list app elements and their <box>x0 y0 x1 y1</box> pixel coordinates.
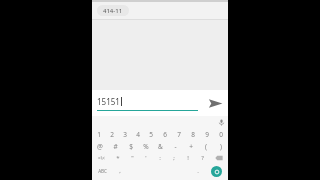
staticText: @ <box>97 142 103 151</box>
staticText: 9 <box>205 130 209 139</box>
button[interactable]: Enter <box>205 164 228 178</box>
button[interactable]: 0 <box>214 128 228 140</box>
button[interactable]: 7 <box>172 128 186 140</box>
staticText: ABC <box>98 168 107 174</box>
staticText: 5 <box>149 130 153 139</box>
button[interactable]: ? <box>195 152 209 164</box>
staticText: % <box>143 142 149 151</box>
staticText: ; <box>173 154 175 162</box>
button[interactable]: # <box>108 140 123 152</box>
button[interactable]: 4 <box>131 128 144 140</box>
button[interactable]: ! <box>181 152 195 164</box>
staticText: 7 <box>177 130 181 139</box>
button[interactable]: $ <box>123 140 138 152</box>
staticText: # <box>113 142 118 151</box>
button[interactable]: 5 <box>144 128 158 140</box>
button[interactable]: 1 <box>92 128 105 140</box>
button[interactable]: * <box>111 152 125 164</box>
staticText: ' <box>145 154 147 162</box>
button[interactable]: 15151 <box>97 96 198 111</box>
button[interactable]: - <box>168 140 183 152</box>
staticText: + <box>189 142 193 151</box>
staticText: ! <box>187 154 189 162</box>
button[interactable]: ; <box>167 152 181 164</box>
staticText: ? <box>201 154 204 162</box>
staticText: " <box>131 154 134 162</box>
staticText: 8 <box>191 130 195 139</box>
staticText: 6 <box>163 130 167 139</box>
staticText: . <box>197 167 199 175</box>
staticText: & <box>158 142 163 151</box>
button[interactable]: : <box>153 152 167 164</box>
button[interactable]: ) <box>213 140 228 152</box>
button[interactable]: =\< <box>92 152 111 164</box>
button[interactable]: 414-11 <box>92 2 228 19</box>
staticText: =\< <box>98 155 105 161</box>
button[interactable]: ' <box>139 152 153 164</box>
staticText: ( <box>205 142 207 151</box>
button[interactable]: 6 <box>158 128 172 140</box>
staticText: , <box>119 167 121 175</box>
staticText: - <box>174 142 177 151</box>
button[interactable]: % <box>138 140 153 152</box>
staticText: ) <box>220 142 222 151</box>
staticText: 414-11 <box>103 7 123 15</box>
button[interactable]: 8 <box>186 128 200 140</box>
button[interactable]: ( <box>198 140 213 152</box>
button[interactable]: 9 <box>200 128 214 140</box>
button[interactable]: , <box>113 164 127 178</box>
button[interactable]: Send <box>202 90 228 116</box>
button[interactable]: 3 <box>118 128 131 140</box>
button[interactable]: + <box>183 140 198 152</box>
button[interactable]: Backspace <box>209 152 228 164</box>
staticText: 15151 <box>97 96 120 107</box>
staticText: 1 <box>97 130 101 139</box>
button[interactable]: Voice input <box>214 116 228 128</box>
button[interactable]: & <box>153 140 168 152</box>
staticText: 3 <box>123 130 127 139</box>
button[interactable]: ABC <box>92 164 113 178</box>
staticText: 2 <box>110 130 114 139</box>
button[interactable]: @ <box>92 140 108 152</box>
staticText: $ <box>129 142 133 151</box>
staticText: : <box>159 154 161 162</box>
button[interactable]: 414-11 <box>103 5 123 16</box>
staticText: 0 <box>219 130 223 139</box>
staticText: 4 <box>136 130 140 139</box>
staticText: * <box>116 154 120 162</box>
button[interactable]: " <box>125 152 139 164</box>
button[interactable]: 2 <box>105 128 118 140</box>
